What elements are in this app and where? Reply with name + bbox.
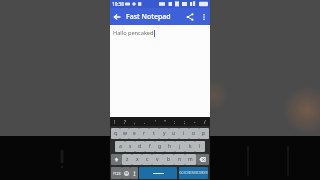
button[interactable]: c [142,154,152,165]
staticText: c [146,156,149,163]
button[interactable]: o [189,128,199,139]
staticText: / [204,119,206,125]
button[interactable]: k [185,141,195,152]
button[interactable]: t [149,128,159,139]
button[interactable]: Symbols [111,167,122,179]
staticText: GO SCREEN RECORDER [179,171,208,175]
button[interactable]: More options [197,10,210,23]
button[interactable]: Share [182,9,197,24]
staticText: " [164,119,166,125]
button[interactable]: Voice input [130,167,138,179]
button[interactable]: h [165,141,175,152]
button[interactable]: , [130,117,140,126]
staticText: Hallo pencaked [113,29,154,37]
button[interactable]: / [200,117,210,126]
button[interactable]: Backspace [196,154,209,165]
staticText: m [188,156,193,163]
staticText: . [144,119,146,125]
staticText: f [149,143,151,150]
button[interactable]: ? [120,117,130,126]
button[interactable]: f [145,141,155,152]
button[interactable]: - [190,117,200,126]
staticText: k [189,143,192,150]
button[interactable]: z [122,154,132,165]
staticText: , [134,119,136,125]
staticText: a [119,143,122,150]
button[interactable]: n [174,154,185,165]
staticText: Fast Notepad [126,12,182,22]
button[interactable]: u [169,128,179,139]
button[interactable]: Emoji [122,167,130,179]
button[interactable]: . [140,117,150,126]
button[interactable]: Enter [179,167,208,179]
staticText: v [156,156,159,163]
button[interactable]: : [170,117,180,126]
staticText: z [126,156,129,163]
staticText: s [129,143,132,150]
button[interactable]: y [159,128,169,139]
button[interactable]: r [139,128,149,139]
staticText: j [179,143,181,150]
staticText: p [202,130,206,137]
button[interactable]: Shift [111,154,122,165]
button[interactable]: Space [139,167,177,179]
button[interactable]: v [152,154,163,165]
button[interactable]: w [120,128,129,139]
staticText: g [158,143,162,150]
button[interactable]: x [132,154,142,165]
staticText: u [172,130,176,137]
button[interactable]: i [179,128,189,139]
button[interactable]: g [155,141,165,152]
staticText: x [136,156,139,163]
button[interactable]: p [199,128,209,139]
staticText: w [123,130,127,137]
button[interactable]: ! [110,117,120,126]
staticText: ?123 [113,171,121,176]
staticText: b [167,156,171,163]
button[interactable]: l [195,141,205,152]
button[interactable]: e [129,128,139,139]
staticText: h [168,143,172,150]
staticText: t [153,130,155,137]
button[interactable]: j [175,141,185,152]
staticText: r [143,130,146,137]
staticText: i [183,130,185,137]
staticText: e [133,130,136,137]
staticText: d [138,143,142,150]
staticText: ; [184,119,186,125]
button[interactable]: s [125,141,135,152]
staticText: o [192,130,196,137]
staticText: 10:38 [112,1,124,7]
staticText: q [114,130,118,137]
staticText: l [199,143,201,150]
staticText: ! [114,119,116,125]
button[interactable]: b [163,154,174,165]
button[interactable]: a [115,141,125,152]
staticText: : [174,119,176,125]
staticText: ? [124,119,126,125]
button[interactable]: Hallo pencaked [110,25,210,117]
button[interactable]: m [185,154,196,165]
staticText: ' [155,119,156,125]
button[interactable]: q [111,128,120,139]
staticText: - [194,119,196,125]
button[interactable]: Back [110,10,124,24]
button[interactable]: " [160,117,170,126]
staticText: y [163,130,166,137]
button[interactable]: ' [150,117,160,126]
button[interactable]: ; [180,117,190,126]
staticText: n [178,156,182,163]
button[interactable]: d [135,141,145,152]
